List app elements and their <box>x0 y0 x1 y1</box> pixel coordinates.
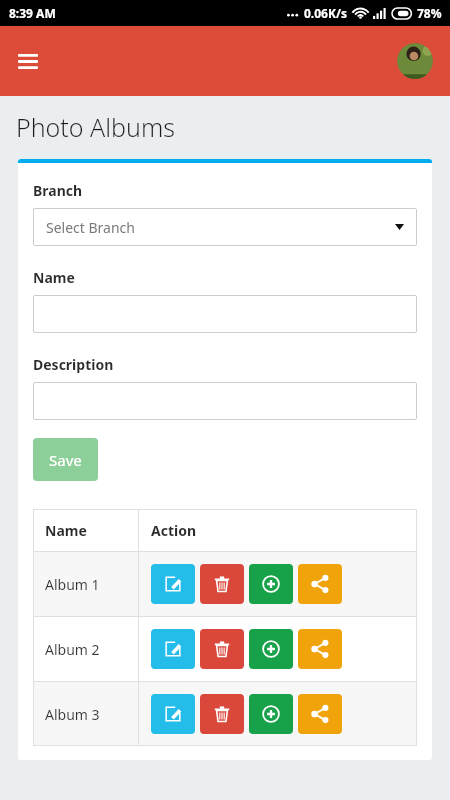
staticText: 0.06K/s <box>304 5 347 21</box>
button[interactable]: Add to Album 3 <box>249 694 293 734</box>
staticText: 8:39 AM <box>9 5 56 21</box>
staticText: 78% <box>417 5 442 21</box>
button[interactable] <box>33 295 417 333</box>
button[interactable]: Delete Album 1 <box>200 564 244 604</box>
button[interactable]: Edit Album 1 <box>151 564 195 604</box>
staticText: Album 2 <box>45 640 100 659</box>
button[interactable]: Delete Album 2 <box>200 629 244 669</box>
button[interactable] <box>33 382 417 420</box>
button[interactable]: Share Album 2 <box>298 629 342 669</box>
staticText: Select Branch <box>46 218 395 237</box>
button[interactable]: Share Album 1 <box>298 564 342 604</box>
button[interactable]: Add to Album 1 <box>249 564 293 604</box>
button[interactable]: Add to Album 2 <box>249 629 293 669</box>
button[interactable]: Delete Album 3 <box>200 694 244 734</box>
button[interactable]: Profile <box>397 43 433 79</box>
button[interactable]: Save <box>33 438 98 481</box>
button[interactable]: Open navigation menu <box>8 41 48 81</box>
button[interactable]: Share Album 3 <box>298 694 342 734</box>
button[interactable]: Select Branch <box>33 208 417 246</box>
staticText: Action <box>151 521 197 540</box>
staticText: Album 3 <box>45 705 100 724</box>
staticText: Photo Albums <box>16 110 175 144</box>
staticText: Name <box>33 268 75 287</box>
staticText: Save <box>49 450 82 470</box>
staticText: Branch <box>33 181 83 200</box>
button[interactable]: Edit Album 3 <box>151 694 195 734</box>
staticText: Album 1 <box>45 575 100 594</box>
staticText: Description <box>33 355 114 374</box>
staticText: Name <box>45 521 87 540</box>
button[interactable]: Edit Album 2 <box>151 629 195 669</box>
